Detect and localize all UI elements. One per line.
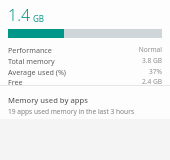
button[interactable]: Total memory <box>8 55 162 66</box>
staticText: Free <box>8 77 23 85</box>
button[interactable]: Performance <box>8 44 162 55</box>
button[interactable]: Average used (%) <box>8 66 162 77</box>
staticText: 1.4 <box>8 4 31 26</box>
staticText: Average used (%) <box>8 67 67 77</box>
staticText: 19 apps used memory in the last 3 hours <box>8 107 135 116</box>
staticText: 2.4 GB <box>141 77 162 85</box>
staticText: GB <box>33 13 45 24</box>
staticText: 37% <box>148 67 162 76</box>
staticText: Performance <box>8 45 52 55</box>
button[interactable]: Free <box>8 77 162 85</box>
staticText: Total memory <box>8 56 55 66</box>
button[interactable]: Memory used by apps <box>0 86 170 119</box>
staticText: Memory used by apps <box>8 95 88 105</box>
staticText: 3.8 GB <box>141 56 162 65</box>
staticText: Normal <box>138 45 162 54</box>
